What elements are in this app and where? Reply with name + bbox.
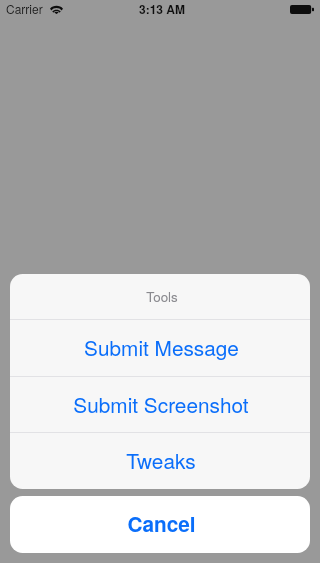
button[interactable]: Submit Screenshot [10,377,310,432]
button[interactable]: Cancel [10,496,310,553]
staticText: 3:13 AM [139,0,186,17]
button[interactable]: Tweaks [10,433,310,489]
button[interactable]: Dismiss [0,0,320,563]
other: Battery full [290,5,314,14]
staticText: Submit Message [84,332,239,362]
other: Wi-Fi signal [50,5,63,14]
staticText: Carrier [6,0,43,17]
staticText: Submit Screenshot [73,389,249,419]
staticText: Cancel [127,509,196,539]
button[interactable]: Submit Message [10,320,310,376]
staticText: Tools [146,287,178,306]
staticText: Tweaks [126,445,196,475]
